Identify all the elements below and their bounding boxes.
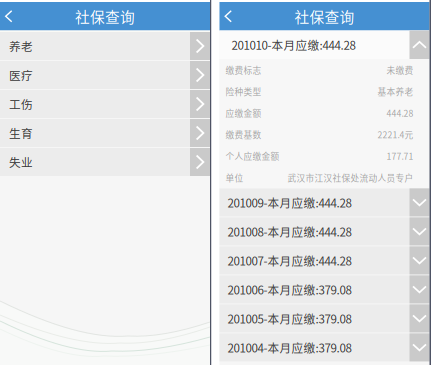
staticText: 基本养老	[377, 85, 413, 98]
staticText: 201005-本月应缴:379.08	[227, 310, 351, 327]
staticText: 201007-本月应缴:444.28	[227, 252, 351, 269]
button[interactable]: 失业	[0, 148, 210, 176]
button[interactable]: 201007-本月应缴:444.28	[219, 246, 429, 274]
staticText: 缴费标志	[225, 64, 261, 76]
staticText: 生育	[9, 125, 33, 141]
button[interactable]: 201006-本月应缴:379.08	[219, 275, 429, 303]
staticText: 201009-本月应缴:444.28	[227, 194, 351, 211]
staticText: 201004-本月应缴:379.08	[227, 339, 351, 356]
button[interactable]: 201010-本月应缴:444.28	[219, 30, 429, 59]
button[interactable]: Back	[0, 2, 42, 30]
staticText: 社保查询	[75, 6, 135, 27]
staticText: 未缴费	[386, 64, 413, 76]
button[interactable]: 工伤	[0, 90, 210, 118]
button[interactable]: 医疗	[0, 61, 210, 89]
staticText: 社保查询	[294, 6, 354, 27]
staticText: 养老	[9, 38, 33, 54]
staticText: 201006-本月应缴:379.08	[227, 281, 351, 298]
staticText: 武汉市江汉社保处流动人员专户	[287, 171, 413, 184]
staticText: 个人应缴金额	[225, 150, 279, 162]
staticText: 险种类型	[225, 85, 261, 98]
button[interactable]: 养老	[0, 32, 210, 60]
staticText: 单位	[225, 171, 243, 184]
button[interactable]: 201005-本月应缴:379.08	[219, 304, 429, 332]
button[interactable]: Back	[219, 2, 261, 30]
button[interactable]: 201009-本月应缴:444.28	[219, 188, 429, 216]
staticText: 201010-本月应缴:444.28	[231, 36, 355, 53]
staticText: 444.28	[386, 107, 413, 119]
staticText: 201008-本月应缴:444.28	[227, 223, 351, 240]
staticText: 医疗	[9, 67, 33, 83]
staticText: 工伤	[9, 96, 33, 112]
staticText: 应缴金额	[225, 107, 261, 119]
staticText: 2221.4元	[377, 128, 413, 141]
button[interactable]: 生育	[0, 119, 210, 147]
staticText: 缴费基数	[225, 128, 261, 141]
button[interactable]: 201008-本月应缴:444.28	[219, 217, 429, 245]
button[interactable]: 201004-本月应缴:379.08	[219, 333, 429, 361]
staticText: 177.71	[386, 150, 413, 162]
staticText: 失业	[9, 154, 33, 170]
